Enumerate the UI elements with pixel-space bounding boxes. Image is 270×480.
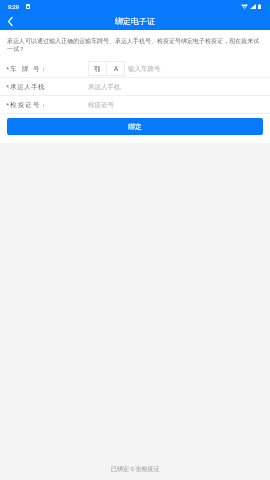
staticText: 运 (17, 83, 24, 91)
staticText: * (6, 65, 10, 73)
staticText: 号 (33, 101, 40, 109)
staticText: 人 (24, 83, 31, 91)
button[interactable]: Back (0, 13, 20, 30)
staticText: 承 (10, 83, 17, 91)
staticText: 机 (38, 83, 40, 91)
staticText: ： (40, 83, 47, 91)
staticText: 承运人可以通过输入正确的运输车牌号、承运人手机号、检疫证号绑定电子检疫证，现在就… (7, 37, 262, 53)
staticText: * (6, 83, 10, 91)
staticText: 输入车牌号 (128, 65, 161, 73)
staticText: 检疫证号 (88, 101, 114, 109)
button[interactable]: 绑定 (7, 118, 263, 135)
staticText: 鄂 (94, 65, 101, 73)
staticText: 证 (25, 101, 32, 109)
staticText: 牌 (22, 65, 29, 73)
staticText: 号 (33, 65, 40, 73)
staticText: ： (40, 101, 47, 109)
staticText: * (6, 101, 10, 109)
staticText: A (114, 64, 119, 73)
staticText: 承运人手机 (88, 83, 121, 91)
staticText: 9:29 (8, 3, 19, 10)
staticText: 车 (10, 65, 17, 73)
staticText: 疫 (18, 101, 25, 109)
staticText: 手 (31, 83, 38, 91)
staticText: 绑定 (128, 122, 142, 131)
staticText: 绑定电子证 (115, 16, 155, 26)
staticText: ： (40, 65, 47, 73)
button[interactable]: 选择字母 (107, 61, 125, 76)
staticText: 检 (10, 101, 17, 109)
button[interactable]: 选择省份 (88, 61, 106, 76)
staticText: 已绑定 0 张检疫证 (111, 465, 160, 473)
